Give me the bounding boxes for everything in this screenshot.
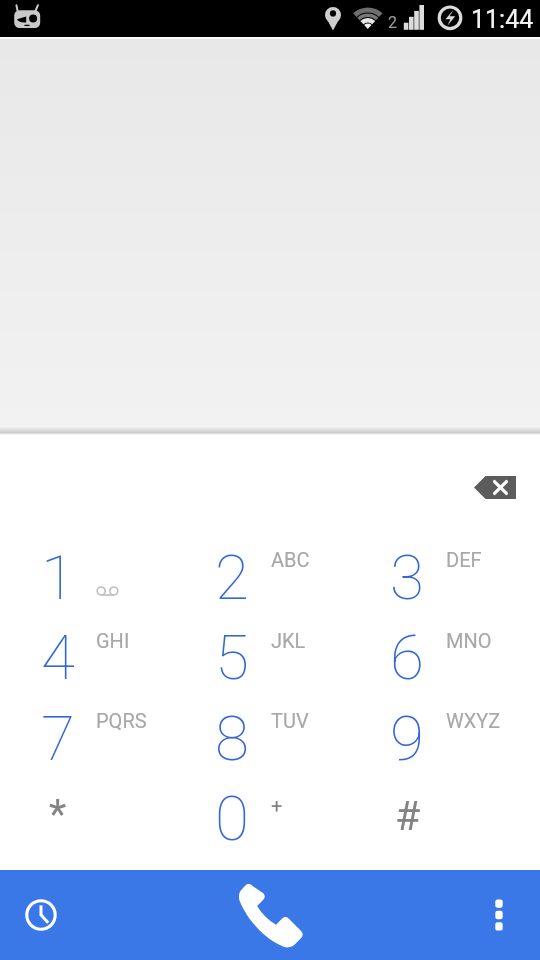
staticText: 2 (215, 541, 249, 614)
staticText: 3 (390, 541, 424, 614)
staticText: ABC (271, 548, 310, 571)
staticText: * (49, 791, 67, 838)
staticText: 0 (215, 782, 249, 855)
button[interactable]: Backspace (450, 447, 540, 527)
button[interactable]: More options (400, 870, 540, 960)
button[interactable]: 5 (180, 518, 360, 598)
staticText: 7 (41, 702, 75, 775)
staticText: 2 (388, 13, 397, 32)
button[interactable]: 7 (0, 598, 180, 678)
button[interactable]: 6 (360, 518, 540, 598)
staticText: 5 (215, 621, 249, 694)
staticText: JKL (271, 629, 306, 652)
button[interactable]: 3 (360, 438, 540, 518)
button[interactable]: Dial (0, 870, 540, 960)
staticText: 11:44 (471, 5, 534, 34)
button[interactable]: Call history (0, 870, 140, 960)
staticText: DEF (446, 548, 482, 571)
staticText: PQRS (96, 709, 147, 732)
staticText: 9 (390, 702, 424, 775)
staticText: 1 (41, 541, 75, 614)
staticText: + (271, 794, 283, 817)
staticText: MNO (446, 629, 492, 652)
staticText: GHI (96, 629, 130, 652)
button[interactable]: 4 (0, 518, 180, 598)
staticText: # (395, 792, 421, 840)
button[interactable]: 9 (360, 598, 540, 678)
staticText: WXYZ (446, 709, 501, 732)
staticText: 6 (390, 621, 424, 694)
staticText: 4 (41, 621, 75, 694)
button[interactable]: 8 (180, 598, 360, 678)
button[interactable]: 0 (180, 678, 360, 758)
staticText: 8 (215, 702, 249, 775)
button[interactable]: * (0, 678, 180, 758)
staticText: TUV (271, 709, 309, 732)
button[interactable]: # (360, 678, 540, 758)
